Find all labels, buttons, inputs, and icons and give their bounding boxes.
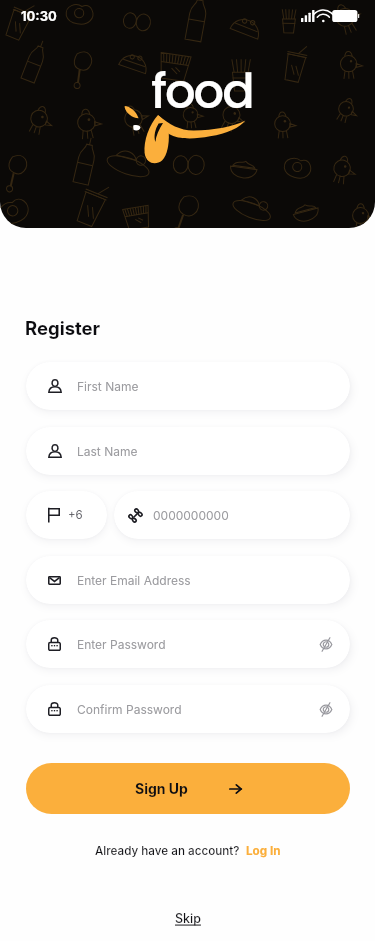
staticText: Register: [25, 317, 101, 339]
staticText: Sign Up: [135, 780, 188, 797]
staticText: Log In: [246, 844, 281, 858]
staticText: Skip: [175, 911, 201, 926]
staticText: First Name: [77, 379, 139, 394]
button[interactable]: Confirm Password: [26, 685, 350, 733]
button[interactable]: Show password: [316, 634, 336, 654]
button[interactable]: 0000000000: [114, 491, 350, 539]
button[interactable]: First Name: [26, 362, 350, 410]
button[interactable]: Log In: [246, 844, 281, 858]
staticText: 0000000000: [153, 508, 229, 523]
staticText: Enter Email Address: [77, 573, 191, 588]
staticText: Last Name: [77, 444, 138, 459]
button[interactable]: +6: [26, 491, 107, 539]
staticText: 10:30: [21, 8, 57, 24]
staticText: +6: [68, 508, 83, 522]
button[interactable]: Sign Up: [26, 763, 350, 814]
button[interactable]: Skip: [175, 911, 201, 926]
button[interactable]: Enter Password: [26, 620, 350, 668]
button[interactable]: Show password: [316, 699, 336, 719]
button[interactable]: Last Name: [26, 427, 350, 475]
button[interactable]: Enter Email Address: [26, 556, 350, 604]
staticText: Confirm Password: [77, 702, 182, 717]
staticText: Enter Password: [77, 637, 166, 652]
staticText: Already have an account?: [95, 844, 240, 858]
staticText: food: [151, 58, 253, 125]
